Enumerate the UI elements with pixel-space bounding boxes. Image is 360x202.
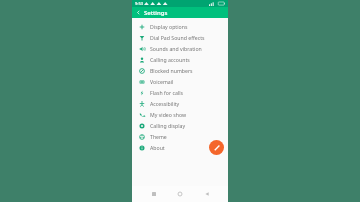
staticText: Accessibility — [150, 100, 180, 107]
button[interactable]: About — [132, 142, 228, 153]
button[interactable]: Home — [175, 189, 185, 199]
staticText: Flash for calls — [150, 89, 183, 96]
button[interactable]: Blocked numbers — [132, 65, 228, 76]
button[interactable]: Edit — [209, 140, 224, 155]
button[interactable]: Calling accounts — [132, 54, 228, 65]
button[interactable]: Calling display — [132, 120, 228, 131]
staticText: Calling display — [150, 122, 186, 129]
button[interactable]: Accessibility — [132, 98, 228, 109]
button[interactable]: Back — [202, 189, 212, 199]
button[interactable]: My video show — [132, 109, 228, 120]
staticText: Sounds and vibration — [150, 45, 202, 52]
staticText: My video show — [150, 111, 187, 118]
button[interactable]: Dial Pad Sound effects — [132, 32, 228, 43]
button[interactable]: Voicemail — [132, 76, 228, 87]
staticText: Blocked numbers — [150, 67, 193, 74]
staticText: Dial Pad Sound effects — [150, 34, 205, 41]
button[interactable]: Back — [134, 8, 143, 17]
staticText: 9:53 — [135, 1, 143, 6]
button[interactable]: Theme — [132, 131, 228, 142]
staticText: Theme — [150, 133, 167, 140]
button[interactable]: Flash for calls — [132, 87, 228, 98]
staticText: Settings — [144, 9, 168, 17]
staticText: Voicemail — [150, 78, 174, 85]
staticText: Calling accounts — [150, 56, 190, 63]
button[interactable]: Recent apps — [149, 189, 159, 199]
button[interactable]: Sounds and vibration — [132, 43, 228, 54]
staticText: About — [150, 144, 165, 151]
button[interactable]: Display options — [132, 21, 228, 32]
staticText: Display options — [150, 23, 188, 30]
